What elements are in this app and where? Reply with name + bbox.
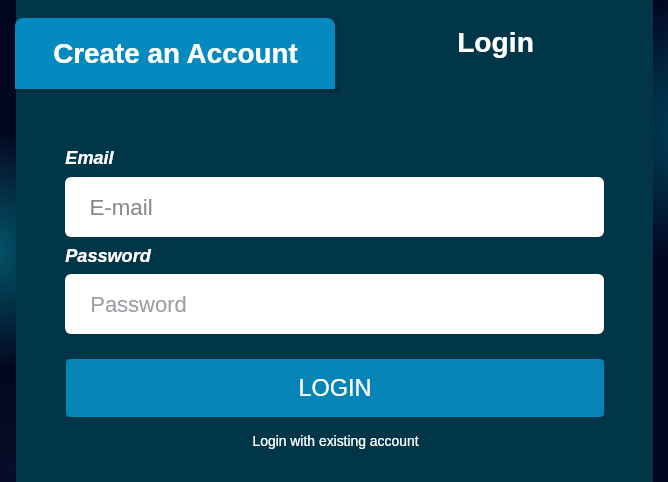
button[interactable]: Login: [334, 0, 653, 90]
button[interactable]: Password: [65, 274, 604, 334]
staticText: Create an Account: [53, 38, 298, 69]
staticText: LOGIN: [298, 375, 372, 401]
staticText: Password: [90, 292, 187, 317]
button[interactable]: LOGIN: [66, 359, 604, 417]
staticText: Login with existing account: [252, 433, 419, 449]
staticText: Login: [457, 26, 534, 58]
button[interactable]: Create an Account: [15, 18, 335, 89]
staticText: E-mail: [89, 195, 153, 220]
staticText: Email: [65, 148, 114, 168]
staticText: Password: [65, 246, 151, 266]
button[interactable]: E-mail: [65, 177, 604, 237]
button[interactable]: Login with existing account: [66, 428, 604, 454]
